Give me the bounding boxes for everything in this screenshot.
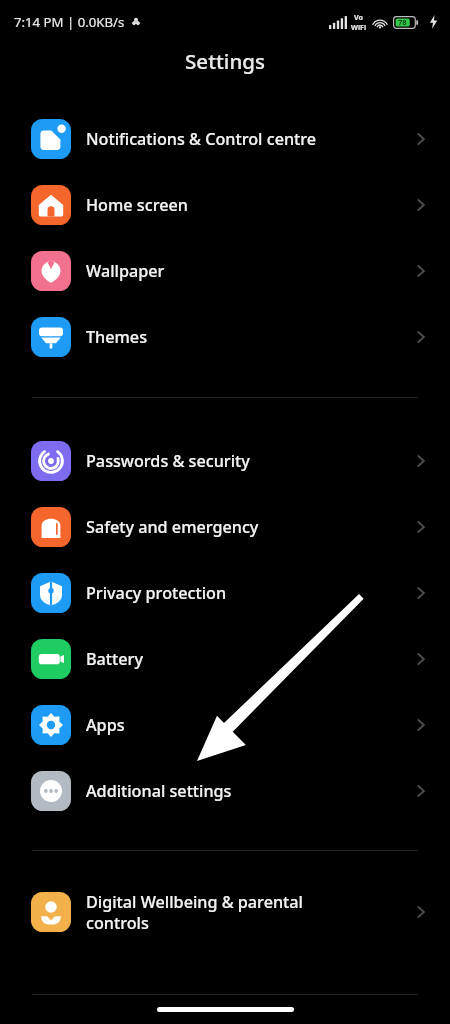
staticText: Battery [86, 648, 404, 670]
staticText: Passwords & security [86, 450, 404, 472]
button[interactable]: Additional settings [0, 758, 450, 824]
staticText: Privacy protection [86, 582, 404, 604]
staticText: 78 [398, 17, 407, 27]
staticText: Safety and emergency [86, 516, 404, 538]
staticText: Home screen [86, 194, 404, 216]
staticText: Additional settings [86, 780, 404, 802]
staticText: Digital Wellbeing & parental controls [86, 891, 404, 934]
staticText: Settings [185, 47, 265, 75]
button[interactable]: Digital Wellbeing & parental controls [0, 881, 450, 943]
button[interactable]: Passwords & security [0, 428, 450, 494]
staticText: Notifications & Control centre [86, 128, 404, 150]
button[interactable]: Home screen [0, 172, 450, 238]
staticText: Apps [86, 714, 404, 736]
staticText: Wallpaper [86, 260, 404, 282]
button[interactable]: Battery [0, 626, 450, 692]
button[interactable]: Themes [0, 304, 450, 370]
button[interactable]: Safety and emergency [0, 494, 450, 560]
button[interactable]: Notifications & Control centre [0, 106, 450, 172]
staticText: 7:14 PM | 0.0KB/s [14, 13, 125, 31]
button[interactable]: Wallpaper [0, 238, 450, 304]
staticText: WiFi [351, 22, 367, 32]
button[interactable]: Apps [0, 692, 450, 758]
staticText: Vo [354, 12, 364, 22]
button[interactable]: Privacy protection [0, 560, 450, 626]
staticText: Themes [86, 326, 404, 348]
